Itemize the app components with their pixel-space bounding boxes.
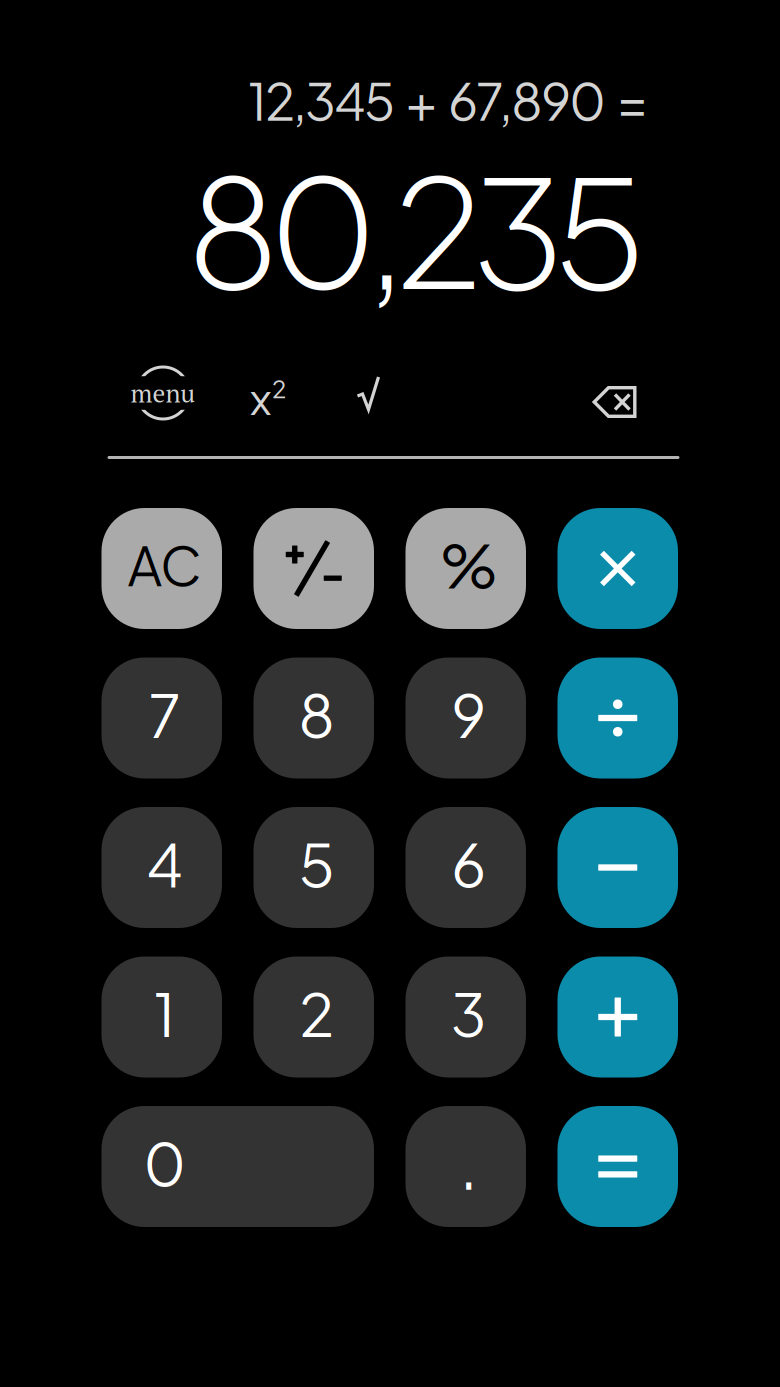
staticText: . — [459, 1120, 478, 1204]
button[interactable]: 8 — [253, 657, 374, 778]
staticText: 1 — [154, 976, 176, 1050]
staticText: 4 — [146, 826, 183, 900]
button[interactable]: Divide — [557, 657, 678, 778]
button[interactable]: Menu — [115, 353, 211, 433]
button[interactable]: 0 — [101, 1106, 374, 1227]
staticText: 12,345 — [248, 68, 395, 132]
button[interactable]: 2 — [253, 956, 374, 1077]
button[interactable]: AC — [101, 508, 222, 629]
button[interactable]: 4 — [101, 807, 222, 928]
staticText: 80,235 — [187, 133, 646, 323]
staticText: 2 — [299, 976, 334, 1050]
staticText: 0 — [143, 1125, 186, 1199]
staticText: = — [617, 68, 648, 132]
button[interactable]: Delete — [569, 362, 659, 442]
staticText: 7 — [149, 677, 181, 751]
staticText: 3 — [451, 976, 487, 1050]
staticText: 2 — [272, 373, 286, 403]
staticText: 9 — [451, 677, 486, 751]
button[interactable]: 9 — [405, 657, 526, 778]
staticText: + — [406, 68, 437, 132]
button[interactable]: % — [405, 508, 526, 629]
button[interactable]: Square — [226, 357, 310, 437]
staticText: menu — [130, 376, 195, 410]
button[interactable]: Equals — [557, 1106, 678, 1227]
button[interactable]: 1 — [101, 956, 222, 1077]
button[interactable]: Plus — [557, 956, 678, 1077]
button[interactable]: 5 — [253, 807, 374, 928]
staticText: x — [250, 369, 271, 425]
button[interactable]: . — [405, 1106, 526, 1227]
staticText: 5 — [299, 826, 335, 900]
button[interactable]: Square root — [327, 353, 411, 433]
button[interactable]: Plus or minus — [253, 508, 374, 629]
button[interactable]: 3 — [405, 956, 526, 1077]
staticText: % — [440, 527, 497, 601]
button[interactable]: Multiply — [557, 508, 678, 629]
button[interactable]: 6 — [405, 807, 526, 928]
button[interactable]: 7 — [101, 657, 222, 778]
staticText: AC — [127, 531, 202, 598]
staticText: 67,890 — [448, 68, 606, 132]
button[interactable]: Minus — [557, 807, 678, 928]
staticText: 8 — [298, 677, 335, 751]
staticText: 6 — [451, 826, 486, 900]
